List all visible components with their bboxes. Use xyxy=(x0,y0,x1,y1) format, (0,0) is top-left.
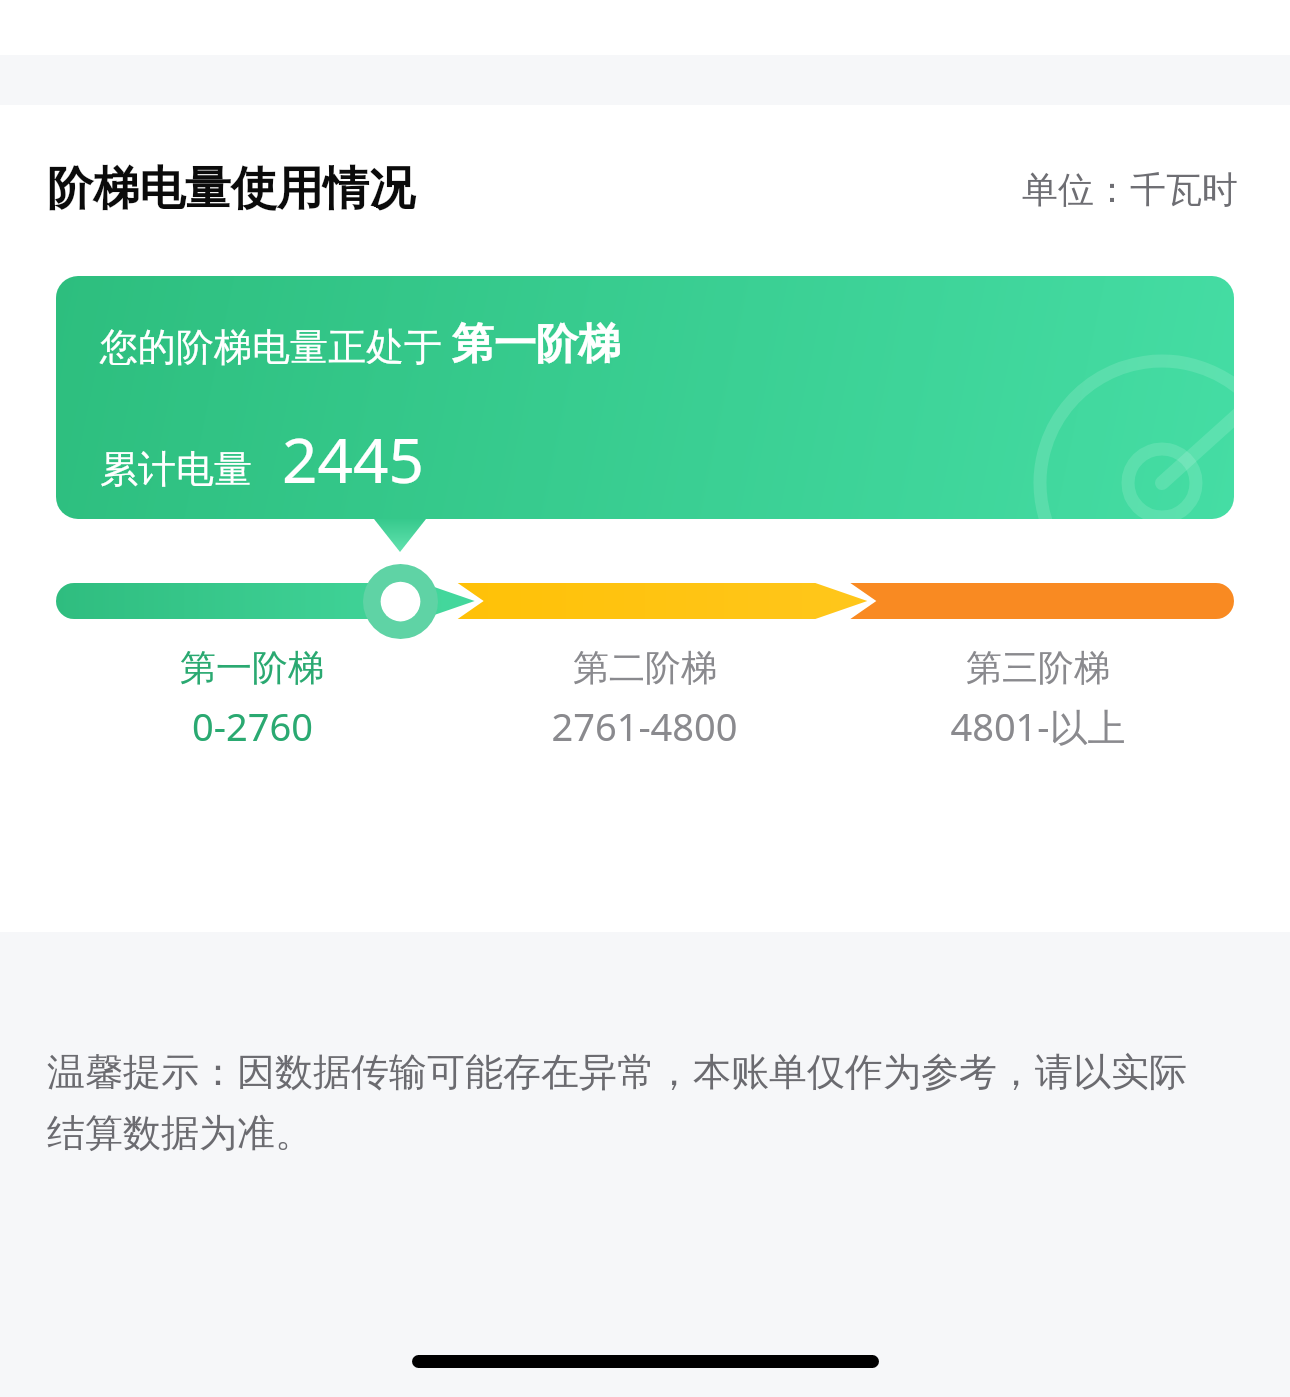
staticText: 第一阶梯 xyxy=(180,645,324,690)
staticText: 温馨提示：因数据传输可能存在异常，本账单仅作为参考，请以实际结算数据为准。 xyxy=(47,1048,1215,1158)
staticText: 2761-4800 xyxy=(551,700,738,752)
staticText: 2445 xyxy=(282,417,424,501)
staticText: 您的阶梯电量正处于 xyxy=(100,319,452,371)
staticText: 0-2760 xyxy=(192,700,313,752)
staticText: 第一阶梯 xyxy=(452,318,620,371)
staticText: 第三阶梯 xyxy=(966,645,1110,690)
staticText: 第二阶梯 xyxy=(573,645,717,690)
button[interactable]: 您的阶梯电量正处于 xyxy=(56,276,1234,519)
staticText: 累计电量 xyxy=(100,445,252,493)
staticText: 4801-以上 xyxy=(950,700,1126,752)
staticText: 单位：千瓦时 xyxy=(1022,167,1238,212)
staticText: 阶梯电量使用情况 xyxy=(47,160,415,218)
